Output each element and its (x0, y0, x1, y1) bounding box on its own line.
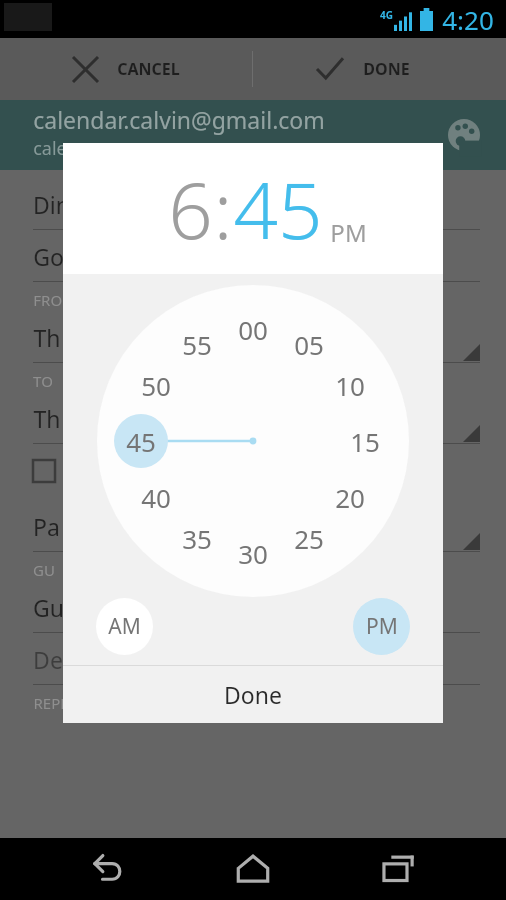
staticText: PM (366, 612, 398, 641)
staticText: FROM (33, 290, 76, 310)
staticText: cale (33, 136, 67, 161)
staticText: Th (33, 322, 61, 353)
button[interactable]: 15 (346, 422, 384, 460)
button[interactable]: 50 (137, 366, 175, 404)
staticText: 05 (294, 327, 324, 362)
staticText: 50 (141, 368, 171, 403)
staticText: REPETITION (33, 693, 119, 713)
staticText: 15 (350, 424, 380, 459)
staticText: AM (108, 612, 141, 641)
button[interactable]: Go (33, 230, 480, 282)
button[interactable]: Th (33, 311, 480, 363)
staticText: 10 (335, 368, 365, 403)
button[interactable]: PM (353, 598, 410, 655)
button[interactable]: 10 (331, 366, 369, 404)
button[interactable]: Gu (33, 581, 480, 633)
staticText: 6 (168, 156, 213, 262)
staticText: 4G (380, 8, 393, 22)
button[interactable]: Done (63, 666, 443, 723)
button[interactable]: 45 (122, 422, 160, 460)
button[interactable]: Description (33, 633, 480, 685)
button[interactable]: AM (96, 598, 153, 655)
staticText: Din (33, 189, 70, 220)
staticText: 20 (335, 480, 365, 515)
staticText: Description (33, 644, 157, 675)
button[interactable]: 35 (178, 519, 216, 557)
button[interactable]: 00 (234, 310, 272, 348)
button[interactable]: Home (214, 838, 292, 900)
button[interactable]: 20 (331, 478, 369, 516)
staticText: 55 (182, 327, 212, 362)
button[interactable]: Pa (33, 500, 480, 552)
staticText: Th (33, 403, 61, 434)
staticText: TO (33, 371, 53, 391)
button[interactable]: Calendar colour (442, 113, 486, 157)
staticText: : (213, 156, 233, 262)
button[interactable]: Din (33, 178, 480, 230)
staticText: 30 (238, 536, 268, 571)
button[interactable]: DONE (253, 38, 506, 100)
staticText: DONE (363, 58, 410, 80)
button[interactable]: 30 (234, 534, 272, 572)
staticText: Go (33, 241, 64, 272)
button[interactable]: Back (68, 838, 146, 900)
button[interactable]: Th (33, 392, 480, 444)
staticText: CANCEL (117, 58, 180, 80)
button[interactable]: 55 (178, 325, 216, 363)
button[interactable]: 6 (63, 143, 443, 274)
staticText: Done (224, 679, 282, 710)
staticText: 25 (294, 521, 324, 556)
staticText: 40 (141, 480, 171, 515)
button[interactable]: Recent apps (360, 838, 438, 900)
staticText: Pa (33, 511, 60, 542)
staticText: GU (33, 560, 55, 580)
staticText: 00 (238, 312, 268, 347)
button[interactable]: 05 (290, 325, 328, 363)
button[interactable]: CANCEL (0, 38, 252, 100)
button[interactable] (97, 285, 409, 597)
button[interactable]: 40 (137, 478, 175, 516)
staticText: Gu (33, 592, 64, 623)
staticText: 45 (233, 156, 323, 262)
button[interactable]: 25 (290, 519, 328, 557)
staticText: 4:20 (442, 2, 494, 37)
staticText: PM (330, 216, 367, 249)
staticText: calendar.calvin@gmail.com (33, 104, 325, 135)
staticText: 35 (182, 521, 212, 556)
staticText: 45 (126, 424, 156, 459)
